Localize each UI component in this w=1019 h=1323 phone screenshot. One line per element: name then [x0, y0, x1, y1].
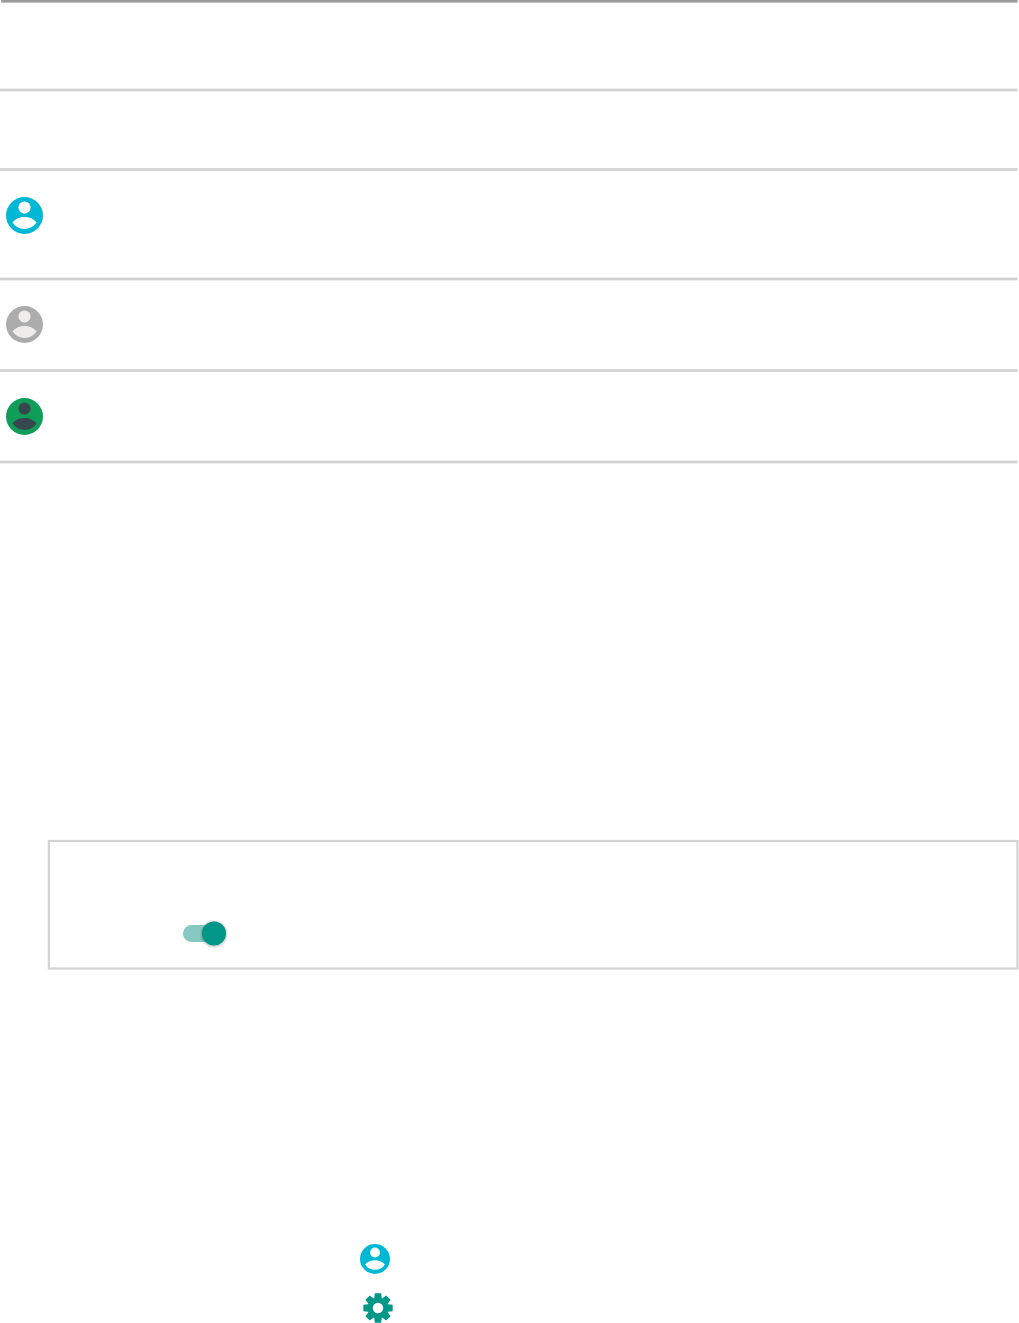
- button[interactable]: Second account: [0, 281, 1018, 369]
- button[interactable]: Account: [360, 1244, 390, 1274]
- button[interactable]: Third account: [0, 372, 1018, 461]
- button[interactable]: Settings: [363, 1293, 393, 1323]
- button[interactable]: Primary account: [0, 171, 1018, 278]
- button[interactable]: Toggle setting: [183, 921, 226, 946]
